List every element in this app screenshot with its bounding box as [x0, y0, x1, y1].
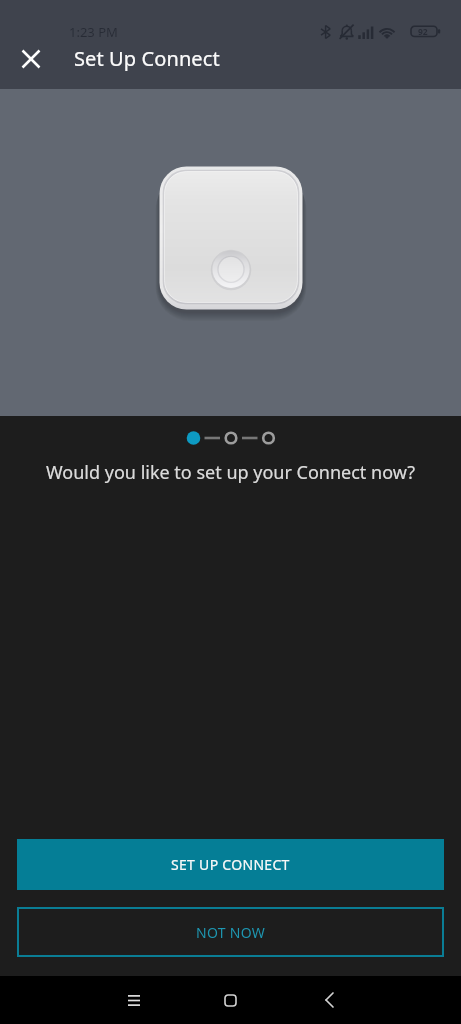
- staticText: NOT NOW: [196, 923, 266, 942]
- staticText: Would you like to set up your Connect no…: [0, 460, 461, 485]
- staticText: 1:23 PM: [69, 23, 118, 41]
- staticText: Set Up Connect: [74, 45, 220, 72]
- button[interactable]: SET UP CONNECT: [17, 839, 444, 890]
- staticText: 92: [418, 26, 428, 38]
- button[interactable]: Recents: [110, 976, 158, 1024]
- button[interactable]: Home: [206, 976, 254, 1024]
- button[interactable]: NOT NOW: [17, 907, 444, 957]
- button[interactable]: Close: [0, 31, 61, 86]
- button[interactable]: Back: [305, 976, 353, 1024]
- staticText: SET UP CONNECT: [171, 855, 290, 874]
